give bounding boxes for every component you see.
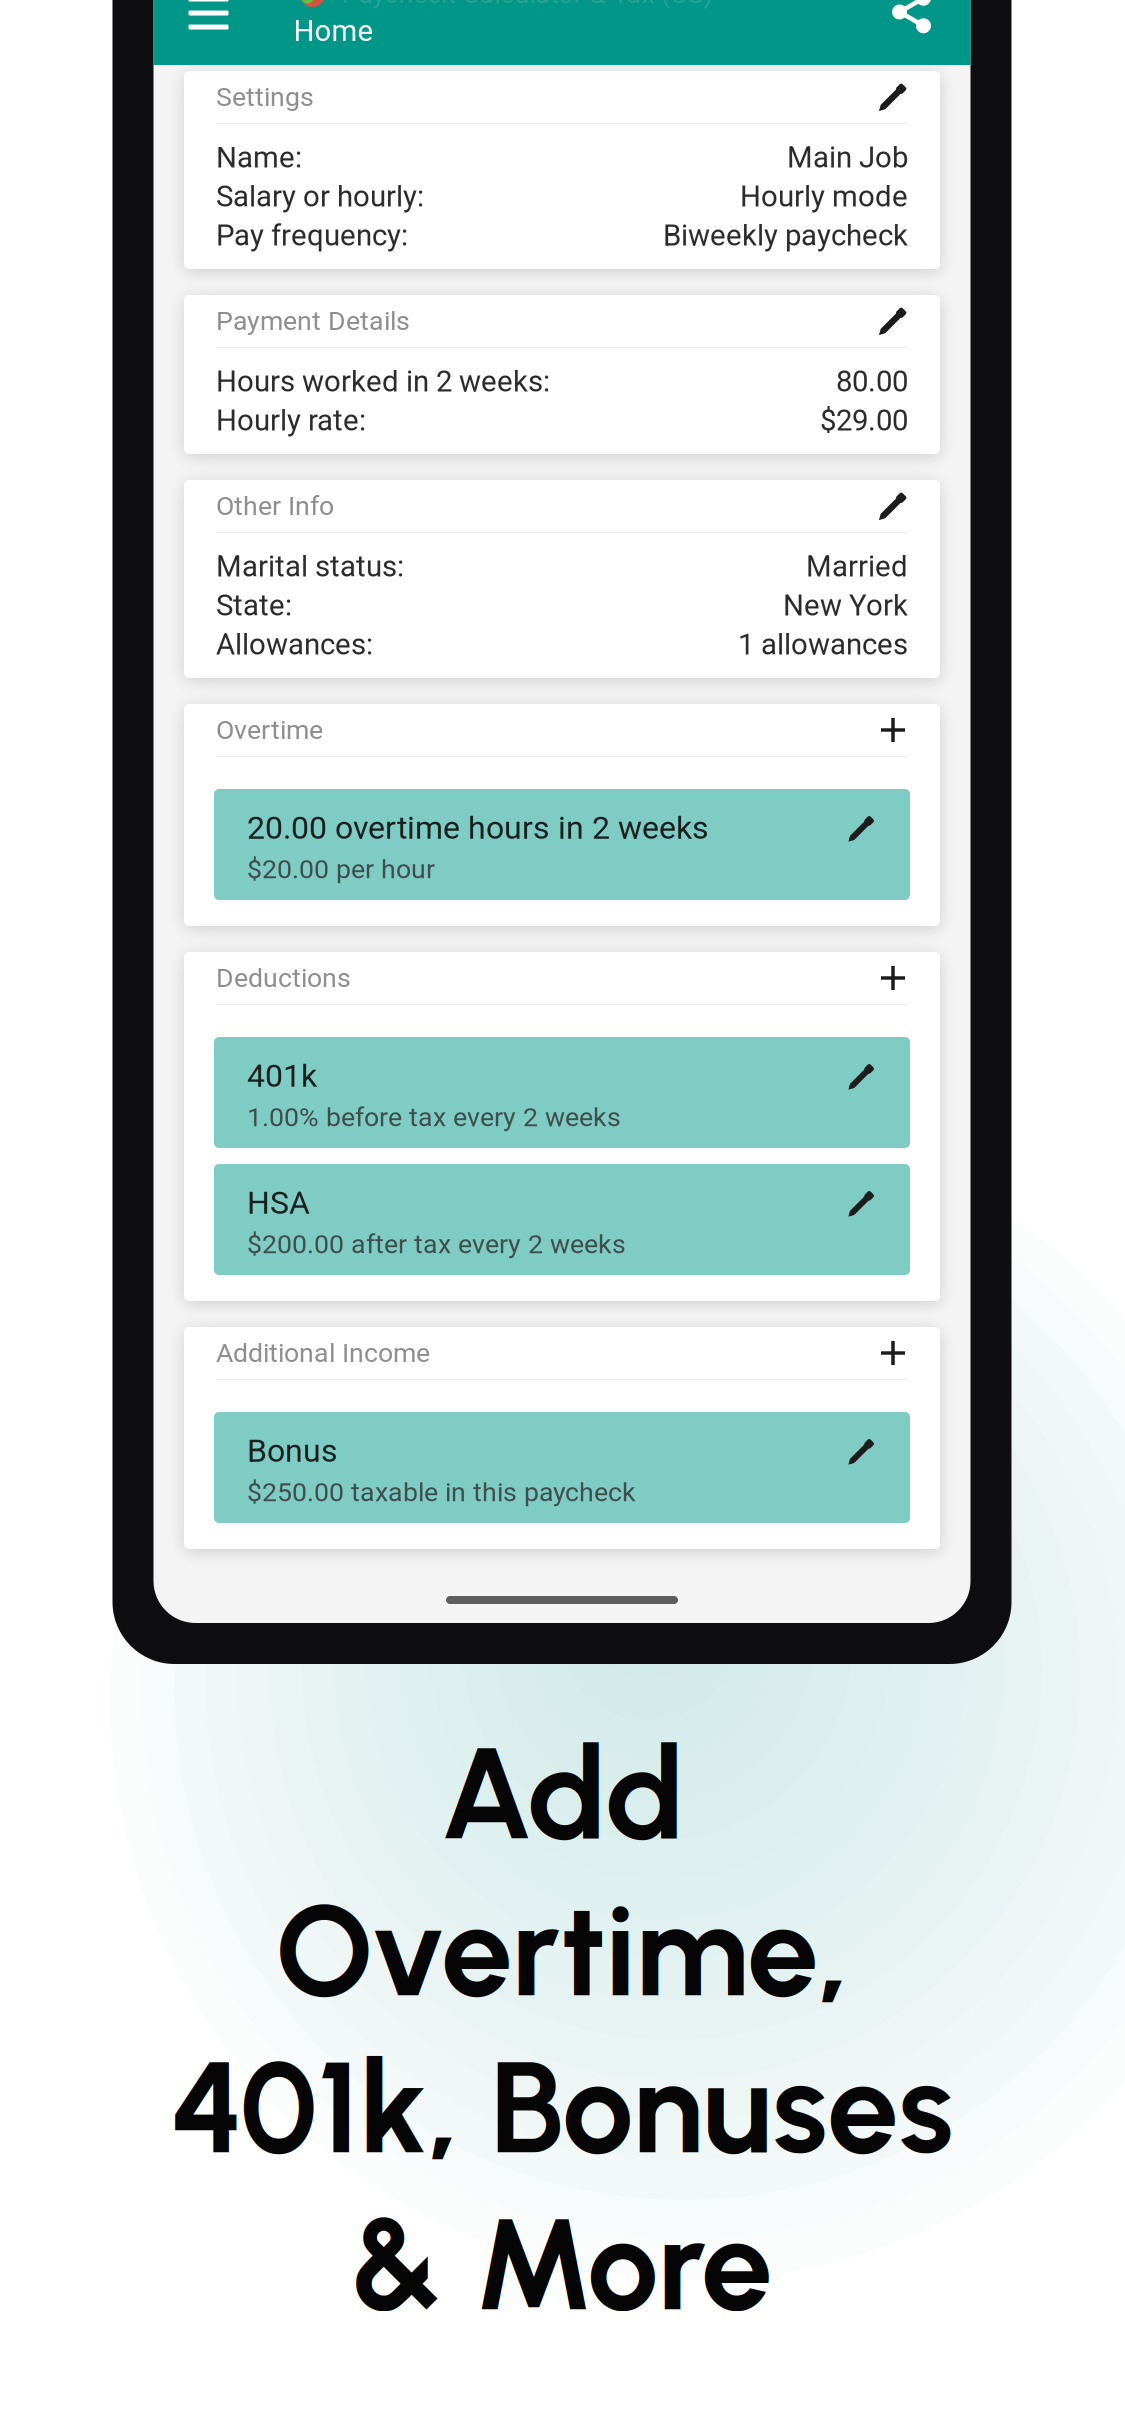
- staticText: State:: [216, 588, 292, 623]
- staticText: Hours worked in 2 weeks:: [216, 364, 550, 399]
- staticText: $200.00 after tax every 2 weeks: [247, 1228, 626, 1260]
- button[interactable]: Edit Other Info: [871, 480, 915, 532]
- button[interactable]: Add Deductions: [871, 952, 915, 1004]
- staticText: New York: [783, 588, 908, 623]
- button[interactable]: HSA: [214, 1164, 910, 1275]
- staticText: HSA: [247, 1184, 310, 1221]
- staticText: 401k, Bonuses: [170, 2031, 954, 2184]
- staticText: Biweekly paycheck: [663, 218, 908, 253]
- staticText: Payment Details: [216, 305, 410, 337]
- staticText: Additional Income: [216, 1337, 430, 1369]
- staticText: Pay frequency:: [216, 218, 408, 253]
- staticText: Salary or hourly:: [216, 179, 424, 214]
- staticText: Hourly rate:: [216, 403, 366, 438]
- staticText: 401k: [247, 1057, 317, 1094]
- button[interactable]: Add Additional Income: [871, 1327, 915, 1379]
- staticText: & More: [351, 2188, 773, 2341]
- staticText: Add: [440, 1717, 684, 1870]
- staticText: 20.00 overtime hours in 2 weeks: [247, 809, 709, 846]
- staticText: 1.00% before tax every 2 weeks: [247, 1101, 621, 1133]
- staticText: Name:: [216, 140, 302, 175]
- staticText: 1 allowances: [738, 627, 908, 662]
- button[interactable]: 401k: [214, 1037, 910, 1148]
- staticText: Married: [806, 549, 908, 584]
- staticText: Deductions: [216, 962, 351, 994]
- button[interactable]: Edit Payment Details: [871, 295, 915, 347]
- staticText: Main Job: [787, 140, 908, 175]
- staticText: $20.00 per hour: [247, 853, 435, 885]
- staticText: 80.00: [836, 364, 908, 399]
- staticText: Settings: [216, 81, 314, 113]
- button[interactable]: Share: [885, 0, 937, 38]
- button[interactable]: 20.00 overtime hours in 2 weeks: [214, 789, 910, 900]
- staticText: Overtime: [216, 714, 323, 746]
- button[interactable]: Edit Settings: [871, 71, 915, 123]
- staticText: Allowances:: [216, 627, 373, 662]
- staticText: Bonus: [247, 1432, 338, 1469]
- staticText: Paycheck Calculator & Tax (US): [341, 0, 712, 10]
- staticText: Overtime,: [275, 1874, 849, 2027]
- button[interactable]: Bonus: [214, 1412, 910, 1523]
- staticText: Home: [293, 14, 373, 48]
- staticText: Other Info: [216, 490, 334, 522]
- button[interactable]: Add Overtime: [871, 704, 915, 756]
- staticText: Hourly mode: [740, 179, 908, 214]
- staticText: Marital status:: [216, 549, 404, 584]
- staticText: $29.00: [820, 403, 908, 438]
- button[interactable]: Menu: [184, 0, 232, 37]
- staticText: $250.00 taxable in this paycheck: [247, 1476, 636, 1508]
